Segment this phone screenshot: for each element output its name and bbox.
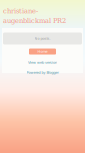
button[interactable]: Home <box>29 49 56 55</box>
staticText: augenblickmal PR2 <box>3 17 66 25</box>
staticText: View web version <box>28 61 57 65</box>
staticText: Powered by Blogger <box>26 71 58 75</box>
staticText: Home <box>37 49 47 53</box>
button[interactable]: Powered by Blogger <box>26 71 58 75</box>
button[interactable]: View web version <box>28 61 57 65</box>
staticText: christiane- <box>3 7 38 15</box>
staticText: No posts. <box>34 36 50 40</box>
